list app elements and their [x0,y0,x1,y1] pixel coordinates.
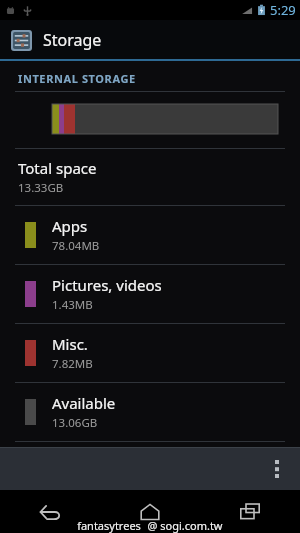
button[interactable]: Back [20,490,80,533]
staticText: 5:29 [270,1,296,19]
staticText: Storage [43,29,102,51]
button[interactable]: Apps [0,206,300,264]
button[interactable]: Home [120,490,180,533]
staticText: Total space [18,158,97,178]
staticText: Apps [52,216,88,236]
button[interactable]: Storage settings [0,20,300,59]
staticText: INTERNAL STORAGE [18,71,136,86]
staticText: 7.82MB [52,356,93,372]
staticText: Misc. [52,334,88,354]
staticText: 13.33GB [18,180,64,196]
staticText: 1.43MB [52,297,93,313]
staticText: 13.06GB [52,415,98,431]
button[interactable]: Total space [0,149,300,205]
staticText: fantasytrees [77,518,141,533]
button[interactable]: Available [0,383,300,441]
staticText: @ sogi.com.tw [147,518,223,533]
staticText: Pictures, videos [52,275,162,295]
button[interactable]: Pictures, videos [0,265,300,323]
staticText: Available [52,393,116,413]
button[interactable]: Recent apps [220,490,280,533]
button[interactable]: Misc. [0,324,300,382]
staticText: 78.04MB [52,238,100,254]
button[interactable]: More options [262,449,292,489]
